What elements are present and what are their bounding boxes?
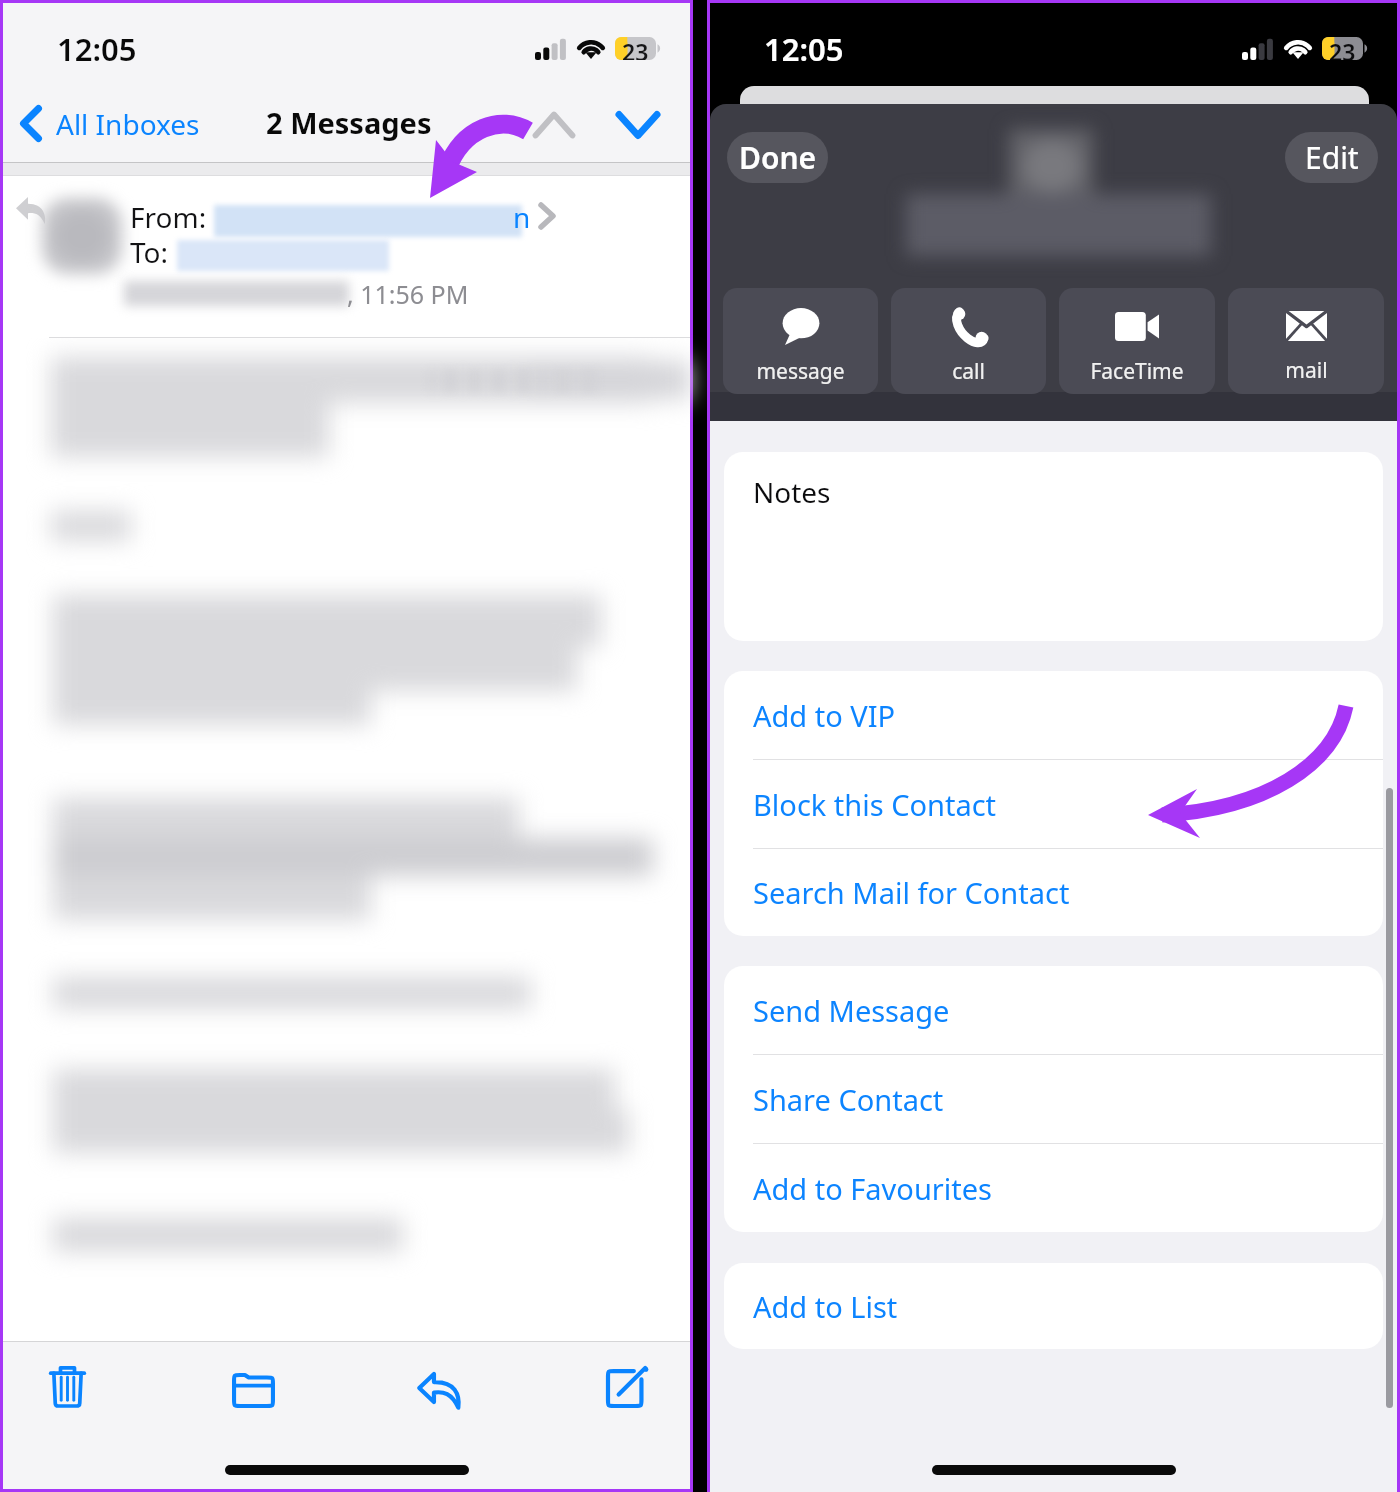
button[interactable]: Share Contact: [724, 1055, 1383, 1143]
staticText: message: [756, 357, 845, 386]
button[interactable]: Add to List: [724, 1263, 1383, 1349]
staticText: Add to VIP: [753, 696, 896, 735]
button[interactable]: FaceTime: [1059, 288, 1215, 394]
staticText: 23: [1329, 36, 1356, 60]
staticText: Notes: [753, 473, 831, 511]
staticText: All Inboxes: [56, 105, 200, 143]
button[interactable]: Next message: [596, 99, 680, 157]
staticText: Block this Contact: [753, 785, 997, 824]
staticText: 2 Messages: [266, 103, 432, 142]
staticText: From:: [130, 198, 207, 236]
button[interactable]: Add to VIP: [724, 671, 1383, 759]
staticText: Send Message: [753, 991, 950, 1030]
button[interactable]: Compose: [581, 1347, 673, 1427]
staticText: 23: [622, 36, 649, 60]
button[interactable]: message: [723, 288, 878, 394]
button[interactable]: Previous message: [512, 99, 596, 157]
staticText: call: [952, 357, 985, 386]
button[interactable]: mail: [1228, 288, 1384, 394]
button[interactable]: call: [891, 288, 1046, 394]
button[interactable]: Delete: [21, 1345, 113, 1425]
staticText: 12:05: [57, 28, 137, 70]
button[interactable]: Move to folder: [207, 1350, 299, 1430]
button[interactable]: Send Message: [724, 966, 1383, 1054]
staticText: To:: [130, 233, 169, 271]
staticText: mail: [1285, 356, 1328, 385]
staticText: FaceTime: [1090, 357, 1184, 386]
button[interactable]: Done: [727, 132, 828, 183]
button[interactable]: All Inboxes: [11, 84, 212, 163]
staticText: Search Mail for Contact: [753, 873, 1070, 912]
staticText: Add to Favourites: [753, 1169, 992, 1208]
staticText: Done: [739, 137, 817, 178]
staticText: n: [513, 198, 531, 236]
staticText: Share Contact: [753, 1080, 944, 1119]
button[interactable]: Sender details: [128, 194, 560, 238]
staticText: Edit: [1305, 137, 1359, 178]
button[interactable]: Reply: [393, 1350, 485, 1430]
staticText: Add to List: [753, 1287, 898, 1326]
button[interactable]: Edit: [1285, 132, 1378, 183]
staticText: , 11:56 PM: [347, 277, 469, 311]
button[interactable]: Block this Contact: [724, 760, 1383, 848]
button[interactable]: Search Mail for Contact: [724, 849, 1383, 936]
staticText: 12:05: [764, 28, 844, 70]
button[interactable]: Add to Favourites: [724, 1144, 1383, 1232]
